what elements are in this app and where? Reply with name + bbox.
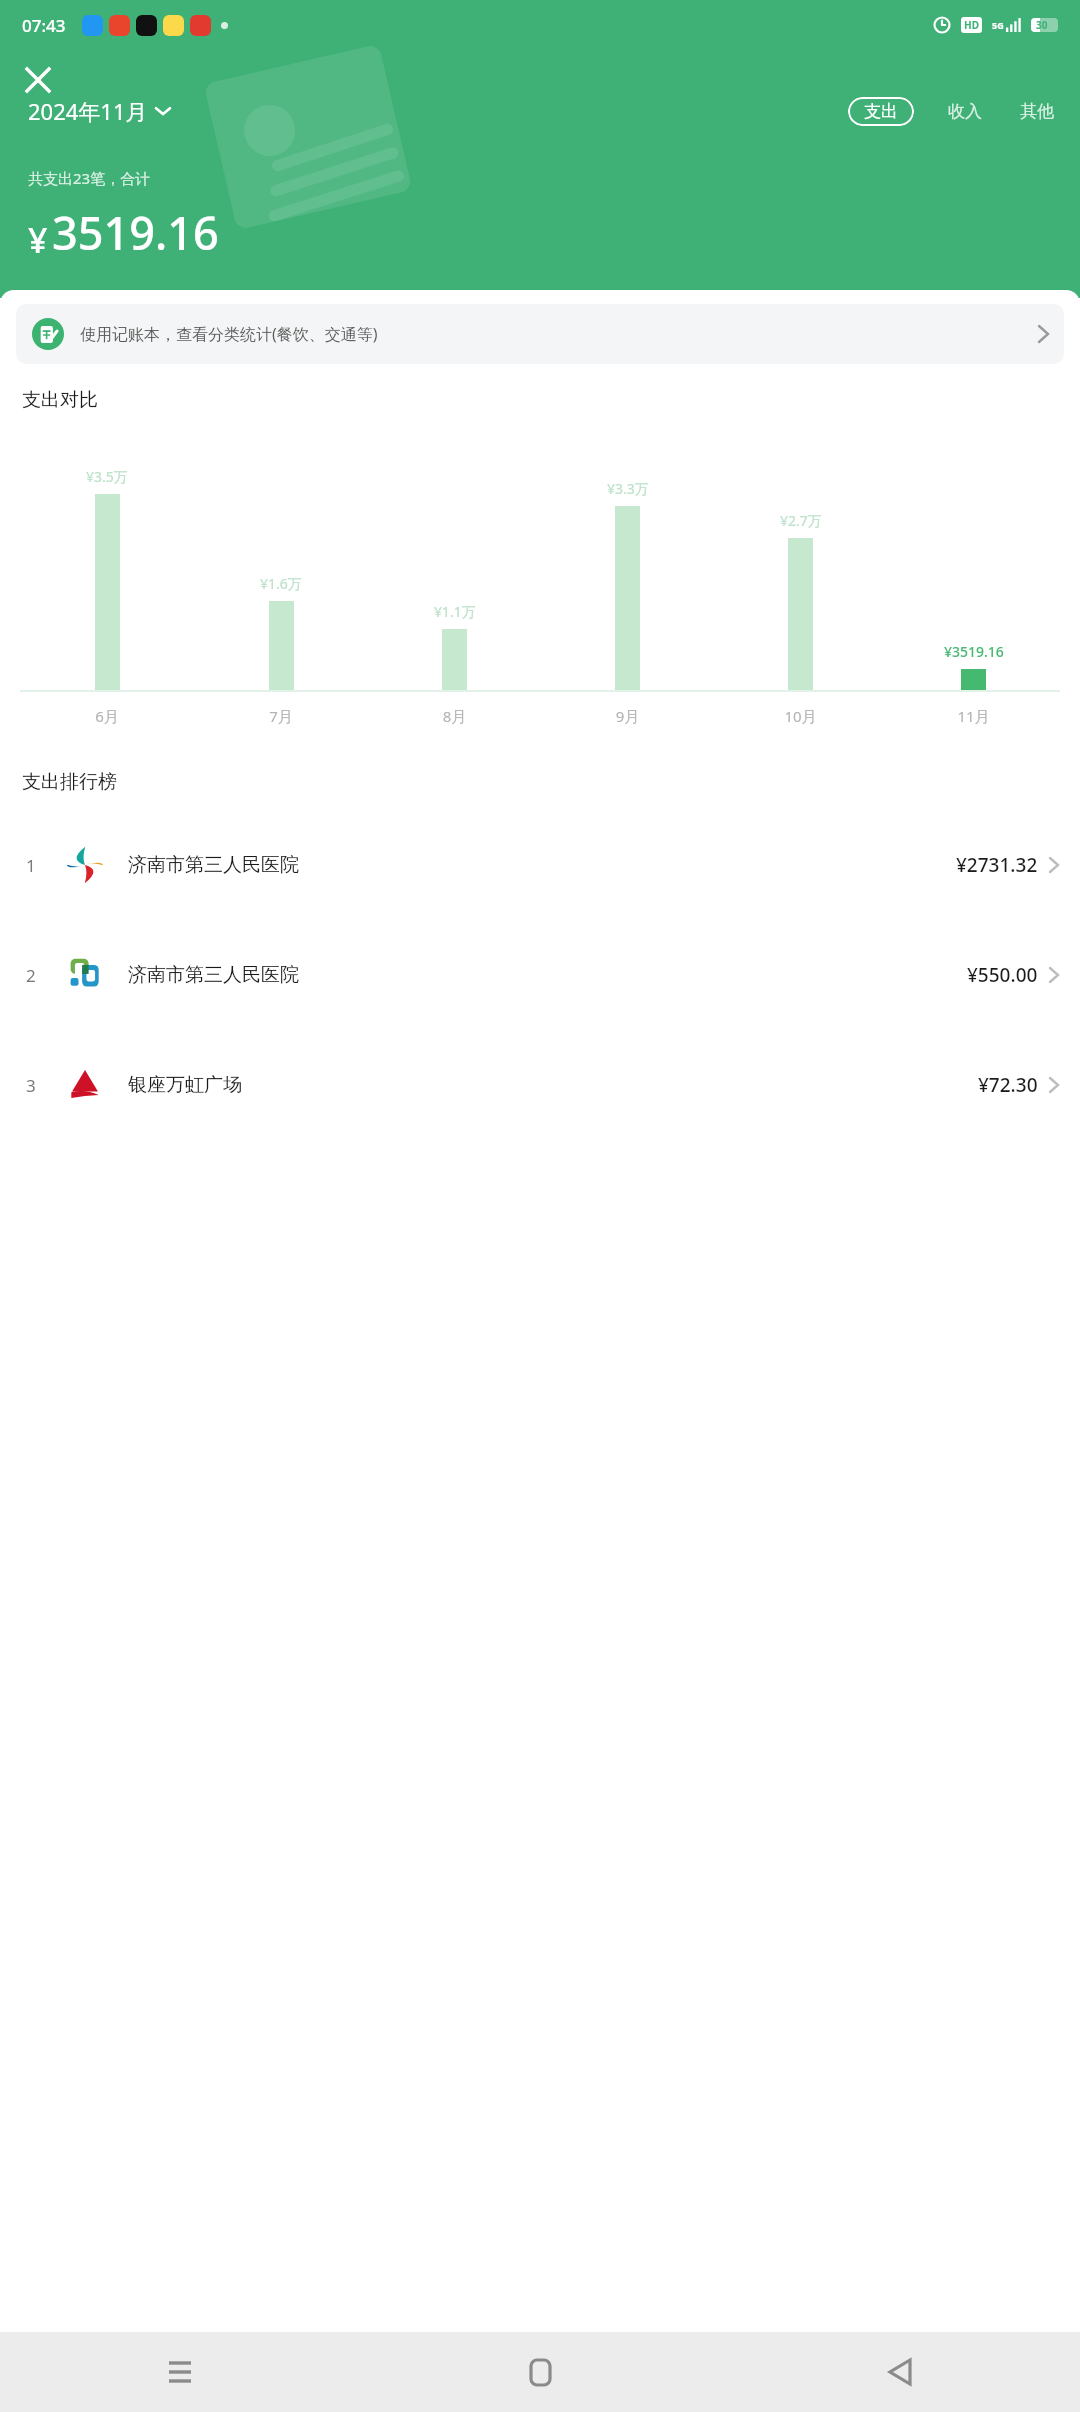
staticText: ¥3.5万	[86, 467, 128, 486]
staticText: 银座万虹广场	[128, 1073, 242, 1097]
staticText: ¥3.3万	[607, 479, 649, 498]
staticText: 9月	[541, 706, 714, 726]
button[interactable]: 收入	[948, 101, 982, 122]
staticText: HD	[964, 18, 979, 32]
staticText: 11月	[887, 706, 1060, 726]
staticText: 济南市第三人民医院	[128, 853, 299, 877]
staticText: 6月	[20, 706, 194, 726]
button[interactable]: 1	[0, 810, 1080, 920]
staticText: ¥550.00	[967, 962, 1038, 988]
staticText: 共支出23笔，合计	[28, 168, 151, 188]
staticText: 支出排行榜	[22, 770, 117, 794]
button[interactable]: Close	[10, 52, 66, 108]
button[interactable]: 3	[0, 1030, 1080, 1140]
staticText: 07:43	[22, 14, 66, 37]
staticText: 济南市第三人民医院	[128, 963, 299, 987]
button[interactable]: 支出	[848, 97, 914, 126]
staticText: 2024年11月	[28, 96, 148, 126]
staticText: 收入	[948, 101, 982, 122]
staticText: 7月	[194, 706, 368, 726]
staticText: 1	[26, 854, 36, 877]
staticText: 5G	[992, 19, 1004, 31]
staticText: ¥	[28, 217, 48, 263]
staticText: 3519.16	[52, 202, 219, 263]
button[interactable]: Back	[720, 2332, 1080, 2412]
staticText: 8月	[368, 706, 541, 726]
button[interactable]: 2024年11月	[28, 96, 170, 126]
staticText: 使用记账本，查看分类统计(餐饮、交通等)	[80, 323, 378, 345]
staticText: 3	[26, 1074, 36, 1097]
staticText: ¥72.30	[978, 1072, 1038, 1098]
staticText: ¥3519.16	[944, 642, 1004, 661]
staticText: ¥2.7万	[780, 511, 822, 530]
staticText: 其他	[1020, 101, 1054, 122]
button[interactable]: Recents	[0, 2332, 360, 2412]
button[interactable]: 2	[0, 920, 1080, 1030]
staticText: ¥1.6万	[260, 574, 302, 593]
button[interactable]: Home	[360, 2332, 720, 2412]
staticText: 10月	[714, 706, 887, 726]
staticText: 30	[1036, 18, 1048, 32]
staticText: 支出	[864, 101, 898, 122]
button[interactable]: 使用记账本，查看分类统计(餐饮、交通等)	[16, 304, 1064, 364]
button[interactable]: 其他	[1020, 101, 1054, 122]
staticText: ¥2731.32	[956, 852, 1038, 878]
staticText: 支出对比	[22, 388, 98, 412]
staticText: 2	[26, 964, 36, 987]
staticText: ¥1.1万	[434, 602, 476, 621]
